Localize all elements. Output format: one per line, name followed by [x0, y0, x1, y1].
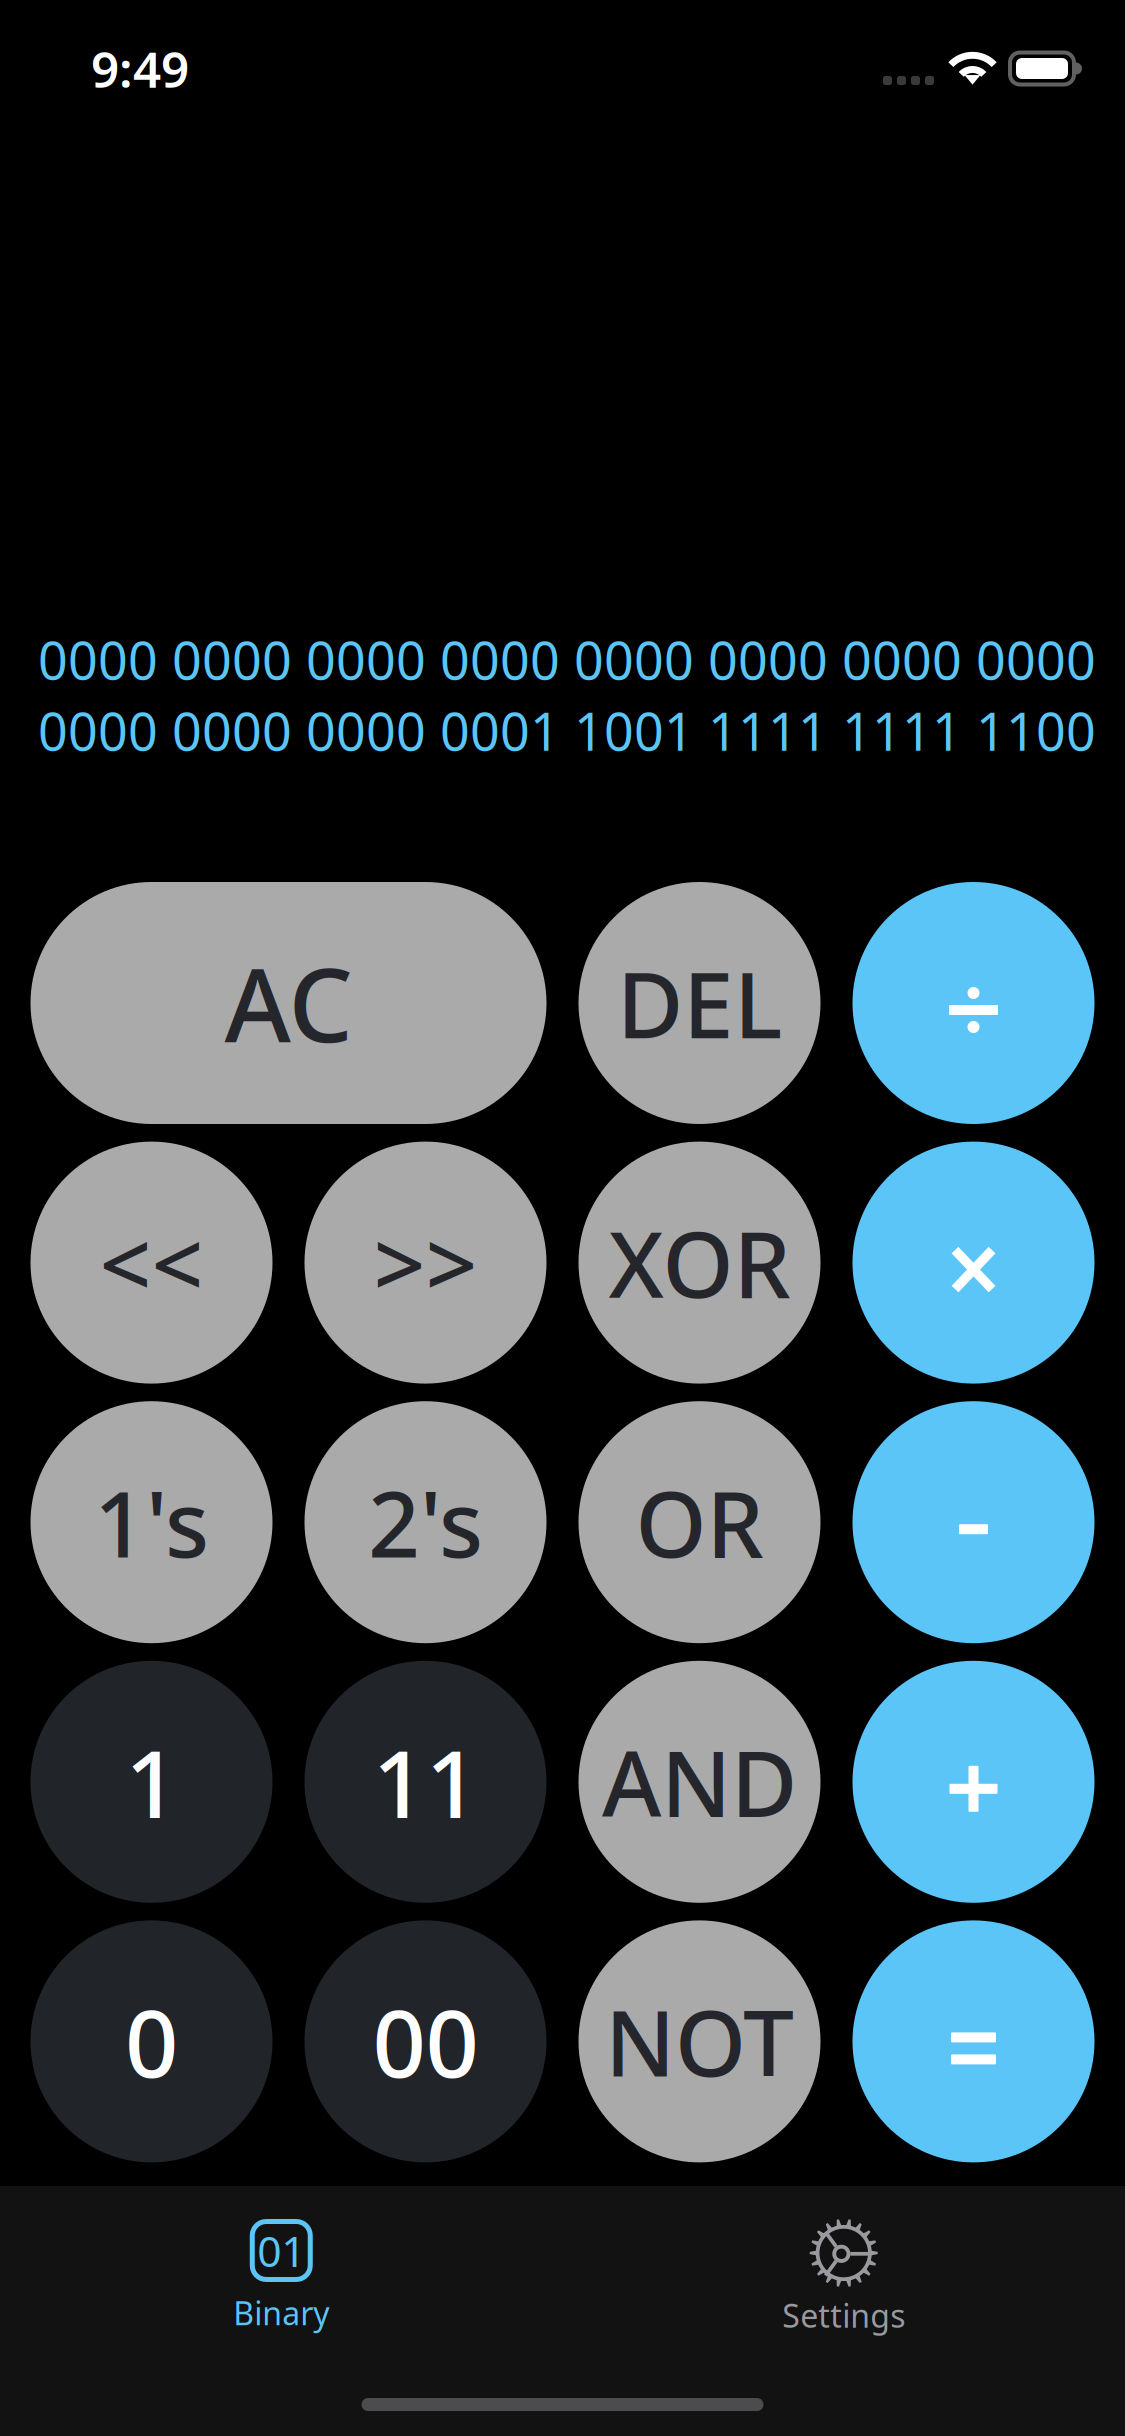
- button[interactable]: 0: [30, 1920, 272, 2162]
- button[interactable]: <<: [30, 1142, 272, 1384]
- staticText: 9:49: [91, 36, 189, 101]
- staticText: OR: [635, 1462, 763, 1582]
- staticText: NOT: [605, 1981, 794, 2102]
- staticText: AND: [602, 1722, 797, 1842]
- staticText: 1: [125, 1720, 178, 1844]
- staticText: 00: [372, 1979, 478, 2103]
- button[interactable]: 2's: [304, 1401, 546, 1643]
- staticText: Binary: [233, 2291, 329, 2334]
- button[interactable]: 00: [304, 1920, 546, 2162]
- staticText: 11: [372, 1720, 478, 1844]
- staticText: 1's: [94, 1462, 209, 1582]
- staticText: 0000 0000 0000 0001 1001 1111 1111 1100: [38, 696, 1096, 765]
- staticText: DEL: [617, 943, 782, 1063]
- button[interactable]: Add: [852, 1661, 1094, 1903]
- staticText: <<: [99, 1202, 203, 1323]
- button[interactable]: Subtract: [852, 1401, 1094, 1643]
- button[interactable]: 1: [30, 1661, 272, 1903]
- button[interactable]: Settings: [562, 2219, 1125, 2336]
- button[interactable]: AC: [30, 882, 546, 1124]
- button[interactable]: Equals: [852, 1920, 1094, 2162]
- button[interactable]: Divide: [852, 882, 1094, 1124]
- button[interactable]: NOT: [578, 1920, 820, 2162]
- button[interactable]: 01: [0, 2221, 562, 2334]
- button[interactable]: DEL: [578, 882, 820, 1124]
- button[interactable]: AND: [578, 1661, 820, 1903]
- button[interactable]: Multiply: [852, 1142, 1094, 1384]
- staticText: 0: [125, 1979, 178, 2103]
- button[interactable]: >>: [304, 1142, 546, 1384]
- button[interactable]: 11: [304, 1661, 546, 1903]
- staticText: 2's: [368, 1462, 483, 1582]
- button[interactable]: OR: [578, 1401, 820, 1643]
- staticText: 01: [257, 2222, 305, 2279]
- button[interactable]: 1's: [30, 1401, 272, 1643]
- button[interactable]: XOR: [578, 1142, 820, 1384]
- staticText: 0000 0000 0000 0000 0000 0000 0000 0000: [38, 625, 1096, 694]
- staticText: >>: [373, 1202, 477, 1323]
- staticText: Settings: [782, 2294, 905, 2336]
- staticText: AC: [224, 936, 352, 1070]
- staticText: XOR: [608, 1202, 790, 1323]
